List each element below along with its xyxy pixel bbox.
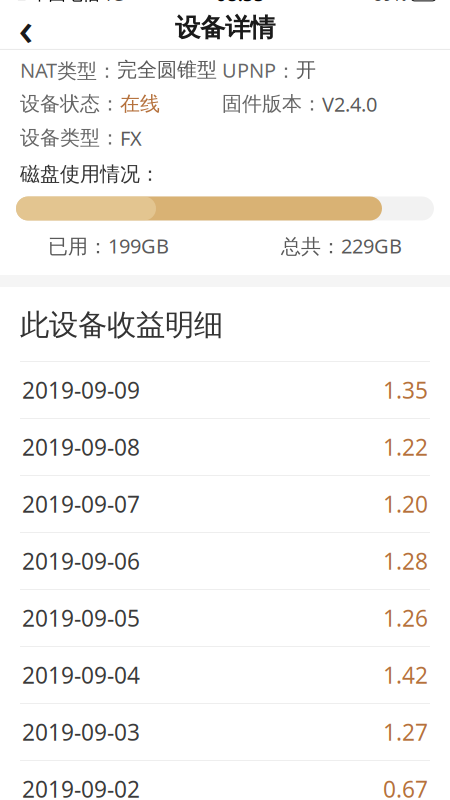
staticText: 89%	[373, 0, 407, 5]
staticText: 2019-09-02	[22, 774, 140, 800]
staticText: ‹	[18, 0, 33, 58]
staticText: 08:55	[216, 0, 265, 6]
button[interactable]: 返回	[0, 6, 52, 50]
staticText: V2.4.0	[322, 91, 377, 117]
staticText: 2019-09-08	[22, 432, 140, 462]
staticText: 2019-09-04	[22, 660, 140, 690]
staticText: 总共：229GB	[281, 232, 402, 259]
button[interactable]: 2019-09-08	[0, 419, 450, 476]
staticText: 1.42	[383, 660, 428, 690]
staticText: 2019-09-06	[22, 546, 140, 576]
staticText: 1.20	[383, 489, 428, 519]
staticText: 0.67	[383, 774, 428, 800]
staticText: NAT类型：	[20, 57, 117, 83]
staticText: 设备类型：	[20, 126, 120, 150]
staticText: 设备状态：	[20, 92, 120, 116]
staticText: 磁盘使用情况：	[20, 162, 160, 186]
staticText: 中国电信	[31, 0, 99, 5]
staticText: 1.27	[383, 717, 428, 747]
button[interactable]: 2019-09-06	[0, 533, 450, 590]
staticText: 1.35	[383, 375, 428, 405]
button[interactable]: 2019-09-05	[0, 590, 450, 647]
staticText: 2019-09-07	[22, 489, 140, 519]
staticText: FX	[120, 125, 142, 151]
staticText: 完全圆锥型	[117, 58, 217, 82]
button[interactable]: 2019-09-04	[0, 647, 450, 704]
button[interactable]: 2019-09-03	[0, 704, 450, 761]
staticText: 2019-09-03	[22, 717, 140, 747]
staticText: 1.26	[383, 603, 428, 633]
staticText: 开	[296, 58, 316, 82]
staticText: 1.28	[383, 546, 428, 576]
staticText: 4G	[101, 0, 124, 5]
staticText: 1.22	[383, 432, 428, 462]
staticText: 此设备收益明细	[20, 307, 223, 343]
button[interactable]: 2019-09-09	[0, 362, 450, 419]
staticText: 2019-09-05	[22, 603, 140, 633]
staticText: 2019-09-09	[22, 375, 140, 405]
staticText: 设备详情	[175, 12, 275, 43]
staticText: 固件版本：	[222, 92, 322, 116]
button[interactable]: 2019-09-02	[0, 761, 450, 800]
staticText: 已用：199GB	[48, 232, 169, 259]
staticText: UPNP：	[222, 57, 296, 83]
staticText: 在线	[120, 92, 160, 116]
button[interactable]: 2019-09-07	[0, 476, 450, 533]
